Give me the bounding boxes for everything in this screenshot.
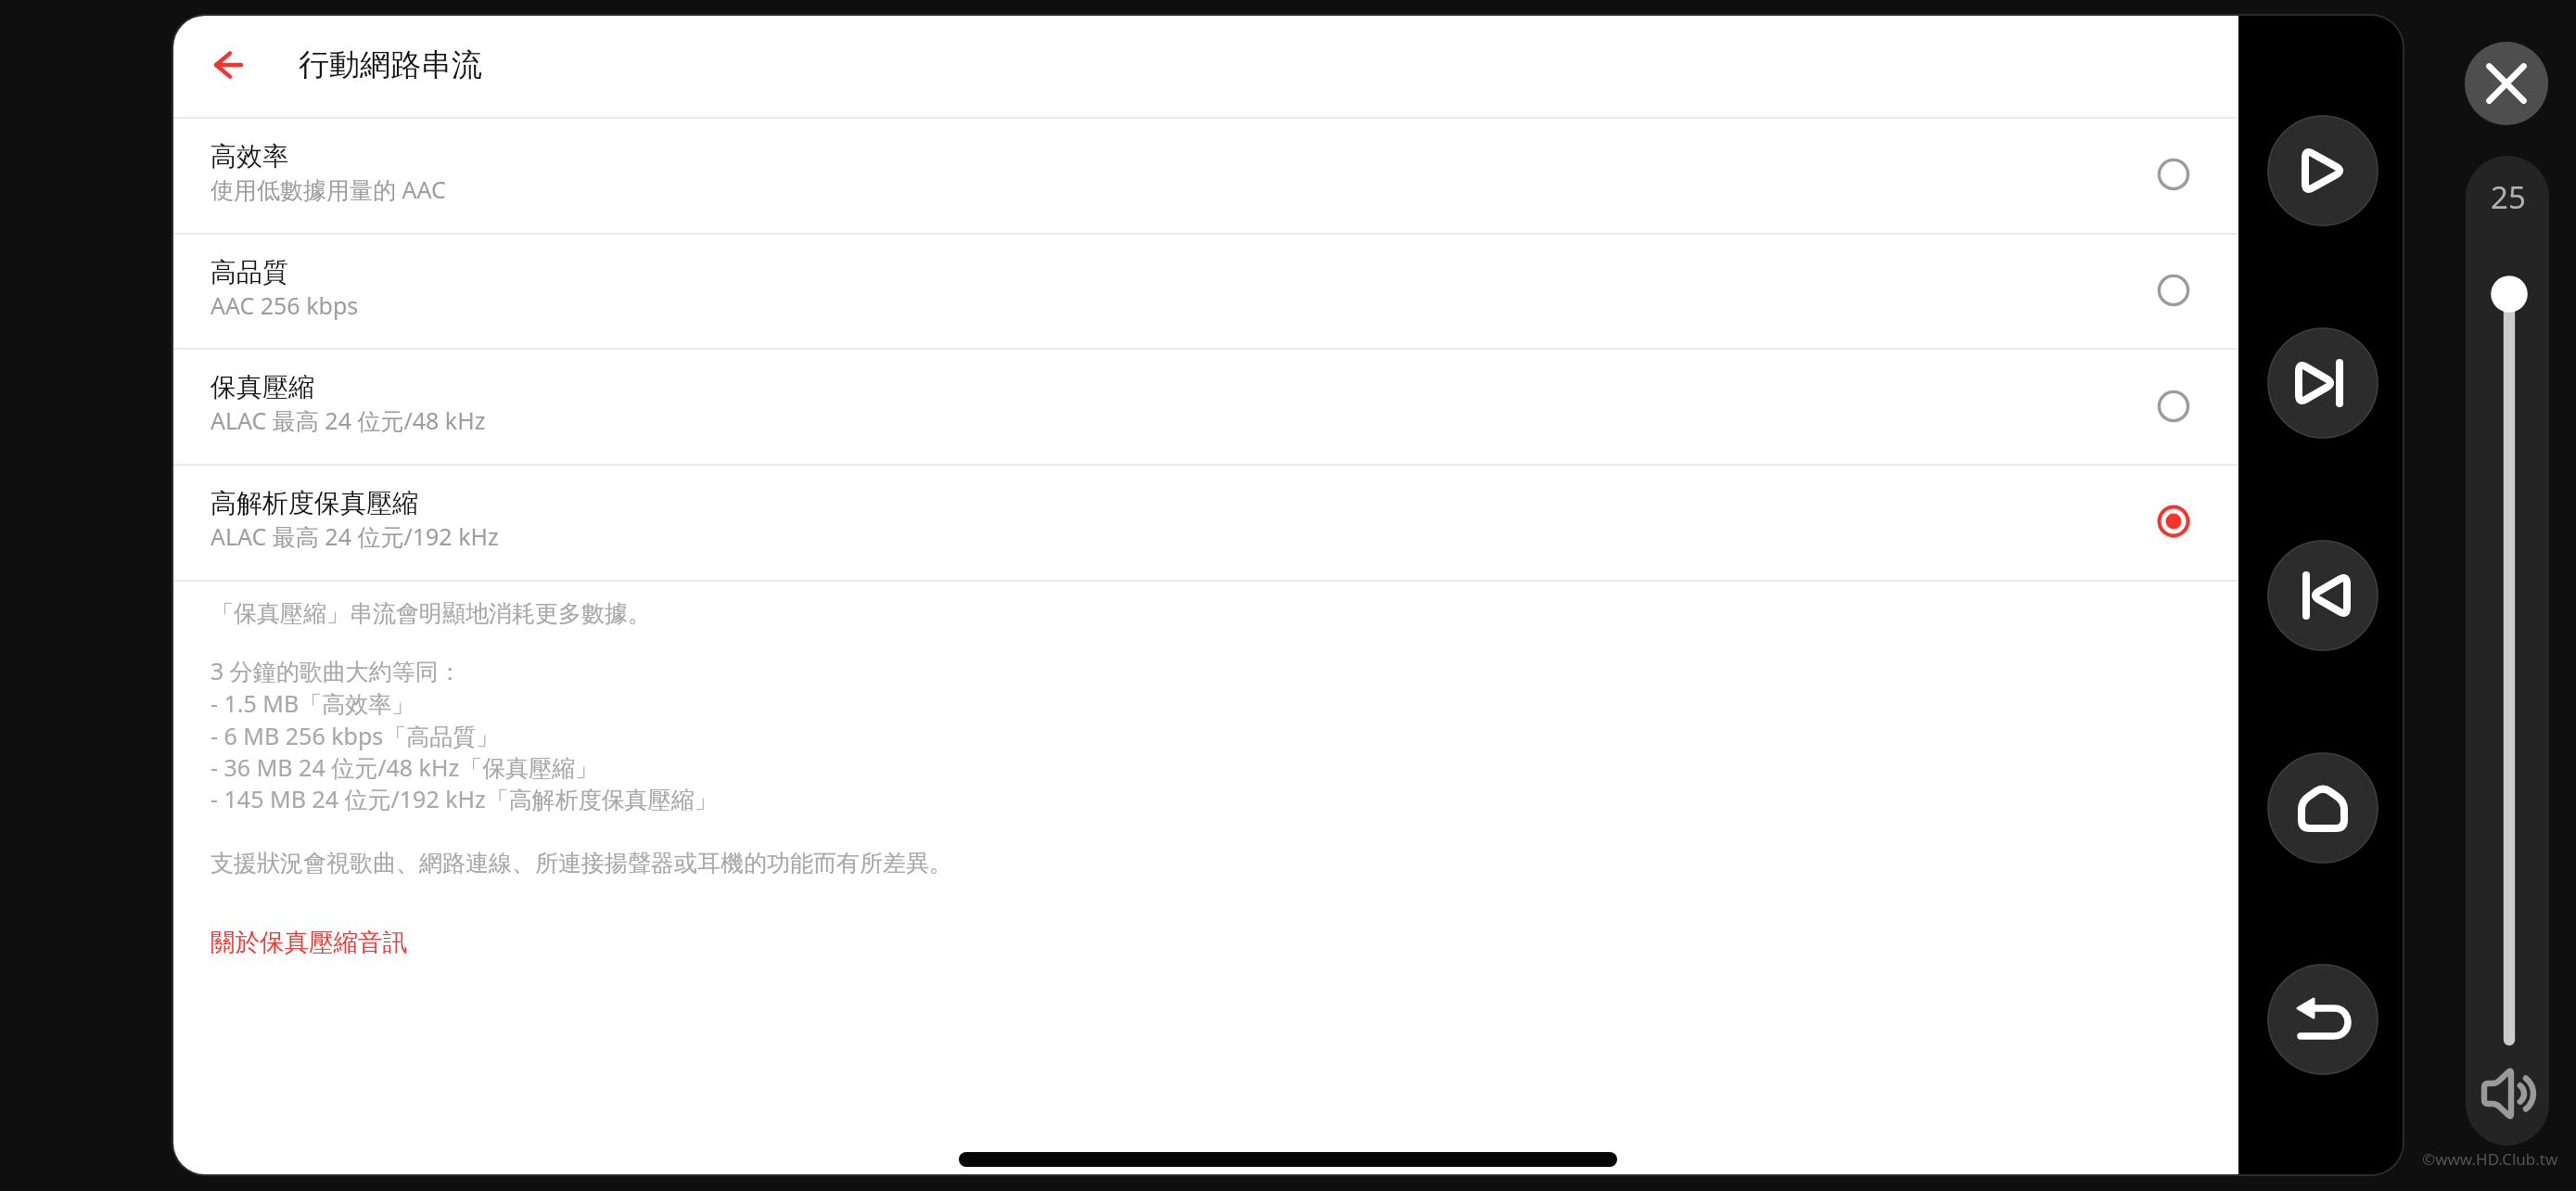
staticText: - 1.5 MB「高效率」 [210,687,415,719]
staticText: 「保真壓縮」串流會明顯地消耗更多數據。 [210,599,651,628]
staticText: 高效率 [210,140,288,173]
button[interactable]: Back [2267,964,2378,1075]
button[interactable]: Home [2267,752,2378,864]
button[interactable]: 關於保真壓縮音訊 [210,927,407,957]
staticText: AAC 256 kbps [210,289,359,321]
staticText: - 145 MB 24 位元/192 kHz「高解析度保真壓縮」 [210,783,718,814]
staticText: 保真壓縮 [210,371,314,403]
staticText: ©www.HD.Club.tw [2422,1148,2558,1170]
button[interactable]: Close [2465,42,2548,125]
button[interactable]: Play [2267,115,2378,226]
staticText: 25 [2491,176,2526,218]
staticText: 高品質 [210,256,288,288]
staticText: - 6 MB 256 kbps「高品質」 [210,720,500,751]
button[interactable] [173,117,2238,233]
staticText: - 36 MB 24 位元/48 kHz「保真壓縮」 [210,751,599,783]
staticText: 支援狀況會視歌曲、網路連線、所連接揚聲器或耳機的功能而有所差異。 [210,849,952,877]
staticText: 行動網路串流 [299,45,482,84]
button[interactable]: Back [198,33,262,98]
staticText: 3 分鐘的歌曲大約等同： [210,655,462,686]
button[interactable] [173,464,2238,580]
staticText: ALAC 最高 24 位元/48 kHz [210,404,486,436]
button[interactable]: Next track [2267,327,2378,439]
button[interactable] [173,348,2238,464]
staticText: 使用低數據用量的 AAC [210,173,446,205]
button[interactable] [173,233,2238,349]
button[interactable]: Previous track [2267,540,2378,651]
staticText: ALAC 最高 24 位元/192 kHz [210,520,499,552]
button[interactable]: Volume [2466,156,2549,1146]
staticText: 高解析度保真壓縮 [210,487,418,519]
staticText: 關於保真壓縮音訊 [210,927,407,957]
